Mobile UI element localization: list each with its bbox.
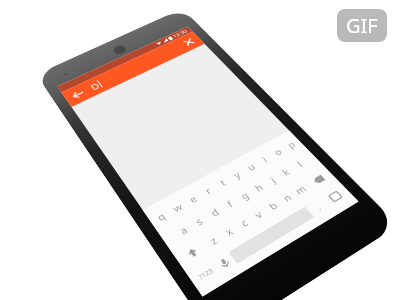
button[interactable]: t — [209, 170, 237, 195]
button[interactable]: d — [200, 199, 230, 226]
staticText: g — [237, 189, 252, 202]
staticText: i — [259, 154, 270, 165]
staticText: m — [292, 182, 309, 197]
staticText: c — [237, 216, 251, 229]
button[interactable]: ?123 — [187, 257, 224, 292]
button[interactable]: r — [193, 178, 222, 204]
button[interactable]: GIF — [337, 9, 387, 42]
button[interactable]: p — [277, 134, 305, 156]
button[interactable]: y — [223, 163, 251, 187]
staticText: x — [222, 224, 236, 239]
staticText: a — [177, 223, 190, 237]
button[interactable]: l — [285, 153, 314, 177]
staticText: w — [170, 200, 185, 215]
button[interactable]: x — [214, 218, 244, 246]
button[interactable]: o — [263, 141, 291, 164]
staticText: 12:30 — [171, 29, 189, 39]
staticText: ?123 — [197, 267, 215, 281]
button[interactable]: Enter — [317, 182, 354, 211]
button[interactable]: q — [147, 203, 176, 230]
button[interactable]: f — [215, 191, 244, 217]
button[interactable]: u — [236, 155, 265, 179]
button[interactable]: i — [250, 148, 278, 171]
button[interactable]: e — [178, 186, 207, 212]
staticText: f — [224, 198, 236, 210]
staticText: k — [279, 166, 293, 178]
button[interactable]: v — [243, 201, 273, 228]
button[interactable]: k — [271, 160, 300, 184]
staticText: GIF — [346, 12, 378, 39]
button[interactable]: j — [258, 168, 287, 192]
staticText: s — [192, 215, 205, 228]
button[interactable]: . — [302, 193, 334, 221]
button[interactable]: Back — [61, 82, 93, 107]
button[interactable]: s — [184, 208, 214, 235]
staticText: u — [244, 160, 258, 173]
button[interactable]: Space — [228, 206, 315, 264]
staticText: n — [279, 191, 295, 204]
button[interactable]: Shift — [173, 235, 213, 270]
staticText: j — [267, 174, 278, 185]
staticText: p — [284, 138, 298, 151]
button[interactable]: z — [198, 226, 229, 255]
button[interactable]: w — [162, 195, 191, 221]
staticText: y — [230, 168, 243, 181]
button[interactable]: a — [168, 217, 198, 245]
staticText: h — [251, 181, 266, 194]
staticText: r — [202, 184, 214, 197]
staticText: . — [313, 202, 324, 212]
button[interactable]: c — [229, 209, 259, 237]
staticText: v — [251, 207, 265, 221]
staticText: D — [88, 80, 102, 92]
button[interactable]: n — [272, 185, 302, 211]
staticText: d — [207, 205, 222, 220]
staticText: t — [217, 177, 228, 188]
button[interactable]: Close — [173, 31, 204, 53]
button[interactable]: b — [258, 193, 287, 219]
staticText: b — [265, 199, 281, 213]
staticText: q — [154, 209, 168, 224]
button[interactable]: m — [286, 177, 315, 203]
staticText: z — [207, 233, 220, 248]
button[interactable]: Voice input — [209, 248, 240, 278]
button[interactable]: g — [230, 183, 259, 209]
button[interactable]: Backspace — [299, 165, 337, 194]
button[interactable]: h — [244, 175, 273, 201]
staticText: o — [271, 146, 285, 158]
staticText: e — [186, 192, 200, 206]
staticText: l — [294, 159, 305, 170]
